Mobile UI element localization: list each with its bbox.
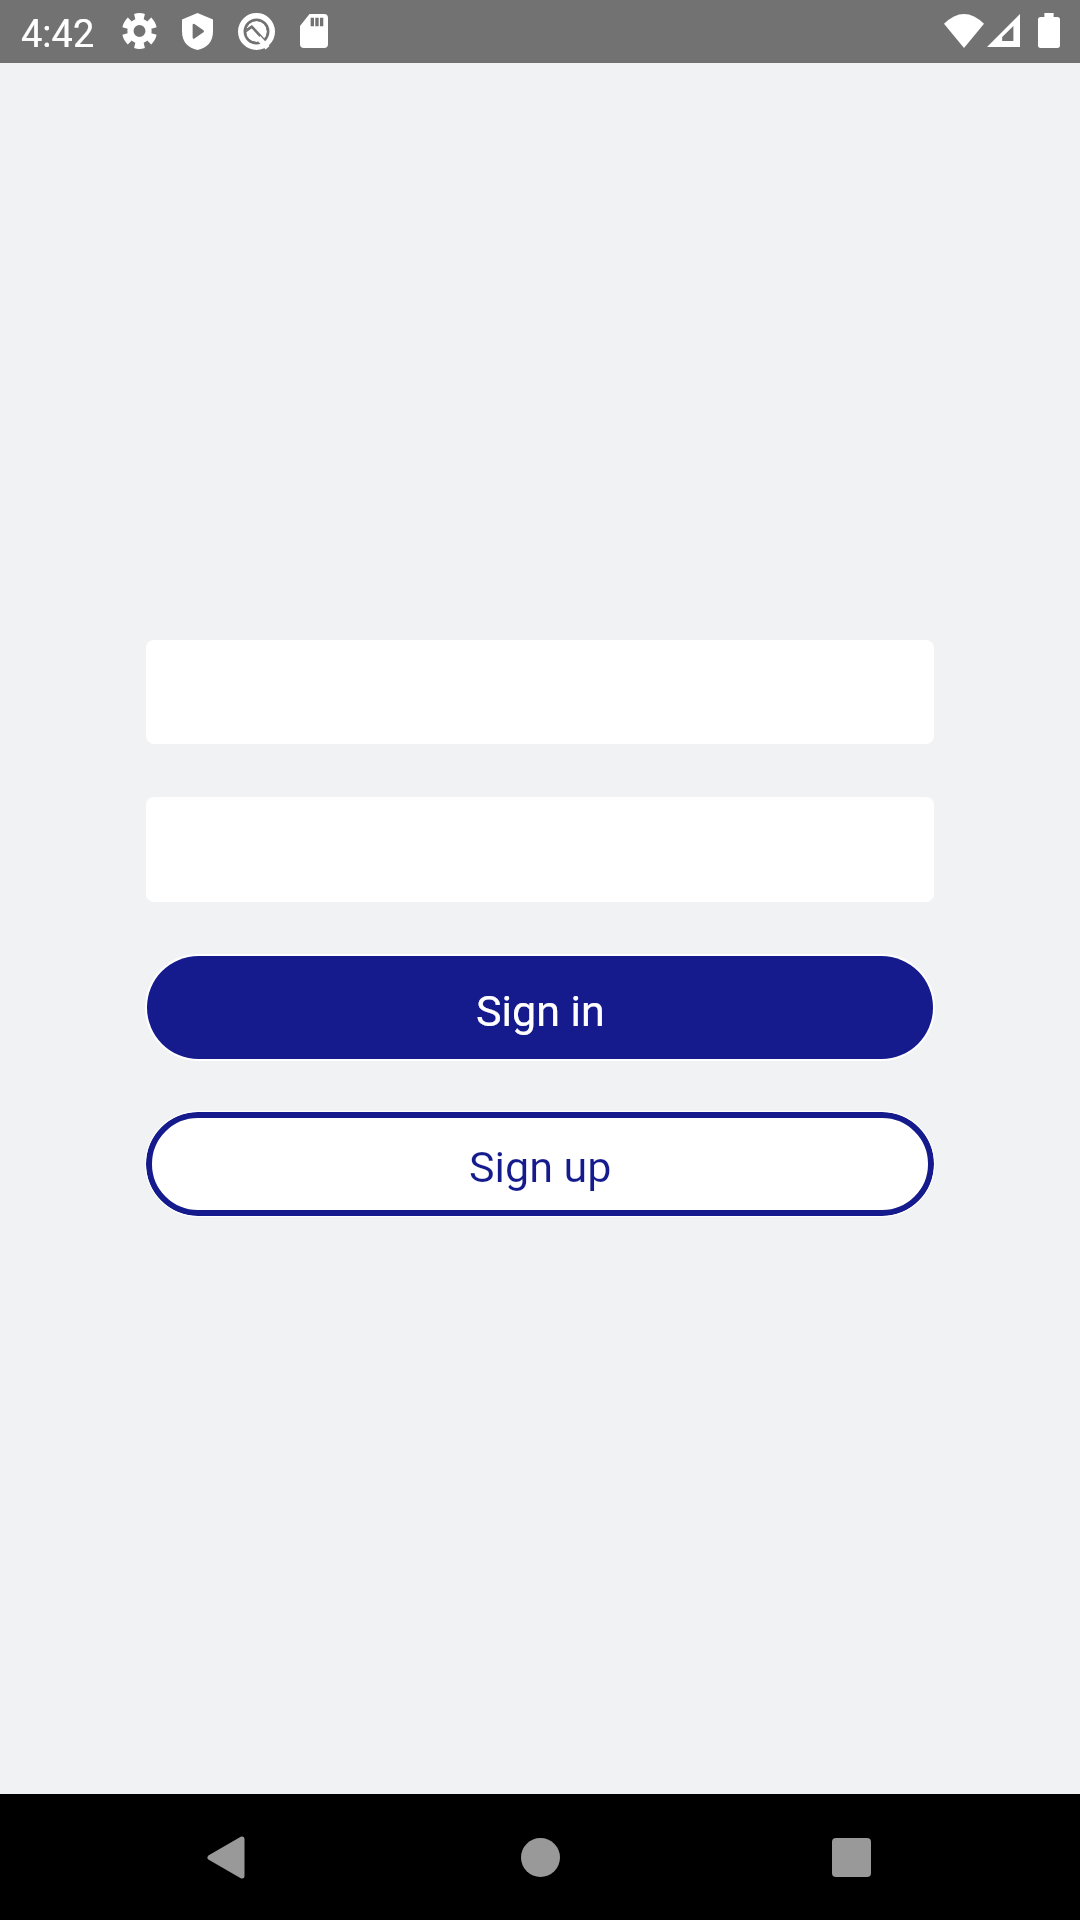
button[interactable]: Home xyxy=(477,1794,603,1920)
button[interactable]: Recent apps xyxy=(788,1794,914,1920)
staticText: 4:42 xyxy=(21,12,95,57)
staticText: Sign in xyxy=(476,986,605,1036)
button[interactable]: Sign in xyxy=(145,954,935,1061)
staticText: Sign up xyxy=(469,1142,612,1192)
button[interactable]: Back xyxy=(163,1794,289,1920)
button[interactable]: Sign up xyxy=(145,1111,935,1217)
